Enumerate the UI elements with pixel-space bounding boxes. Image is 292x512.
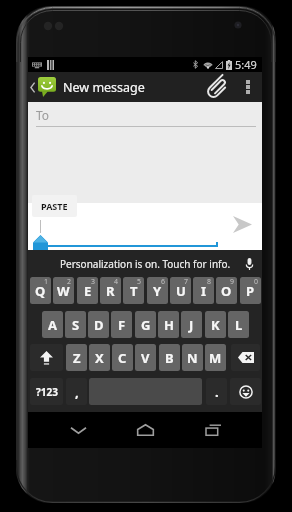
staticText: D [94, 316, 104, 334]
button[interactable]: K [205, 311, 226, 338]
staticText: 0 [254, 277, 259, 287]
staticText: I [201, 282, 207, 300]
button[interactable]: Q [30, 277, 51, 304]
other: Backspace [238, 352, 254, 363]
button[interactable]: Recent apps [195, 412, 231, 448]
button[interactable]: Personalization info [28, 250, 262, 277]
button[interactable]: Shift [30, 344, 63, 371]
button[interactable]: V [135, 344, 156, 371]
staticText: To [36, 107, 50, 123]
staticText: O [221, 282, 232, 300]
staticText: ?123 [36, 385, 58, 399]
button[interactable]: R [100, 277, 121, 304]
staticText: 6 [161, 277, 166, 287]
button[interactable]: L [228, 311, 249, 338]
button[interactable]: . [206, 378, 227, 405]
button[interactable]: PASTE [32, 195, 77, 217]
staticText: A [48, 316, 57, 334]
staticText: PASTE [41, 200, 68, 212]
staticText: 5:49 [235, 57, 257, 72]
button[interactable]: D [88, 311, 109, 338]
staticText: Q [35, 282, 46, 300]
staticText: 2 [67, 277, 72, 287]
button[interactable]: W [53, 277, 74, 304]
button[interactable]: Y [147, 277, 168, 304]
button[interactable]: G [135, 311, 156, 338]
button[interactable]: P [240, 277, 261, 304]
staticText: T [130, 282, 138, 300]
staticText: J [189, 316, 194, 334]
staticText: Personalization is on. Touch for info. [60, 257, 231, 271]
button[interactable]: Attach [201, 72, 235, 102]
staticText: 3 [91, 277, 96, 287]
staticText: C [118, 349, 127, 367]
staticText: R [106, 282, 115, 300]
button[interactable]: M [205, 344, 226, 371]
button[interactable]: J [181, 311, 202, 338]
button[interactable]: O [216, 277, 237, 304]
staticText: 4 [114, 277, 119, 287]
staticText: S [72, 316, 80, 334]
button[interactable]: More options [235, 72, 260, 102]
button[interactable]: U [170, 277, 191, 304]
button[interactable]: Z [66, 344, 87, 371]
button[interactable]: F [111, 311, 132, 338]
staticText: 5 [137, 277, 142, 287]
staticText: P [246, 282, 255, 300]
staticText: 9 [230, 277, 235, 287]
staticText: . [215, 383, 219, 401]
button[interactable]: Emoji [230, 378, 261, 405]
other: Shift [40, 351, 53, 365]
button[interactable]: C [112, 344, 133, 371]
staticText: M [209, 349, 222, 367]
button[interactable]: E [77, 277, 98, 304]
staticText: B [165, 349, 174, 367]
staticText: G [141, 316, 151, 334]
button[interactable]: Hide keyboard [60, 412, 96, 448]
button[interactable]: H [158, 311, 179, 338]
button[interactable]: , [66, 378, 87, 405]
other: Emoji [239, 385, 253, 399]
button[interactable]: X [89, 344, 110, 371]
staticText: X [95, 349, 104, 367]
button[interactable]: N [182, 344, 203, 371]
button[interactable]: Navigate up [28, 72, 58, 102]
button[interactable]: S [65, 311, 86, 338]
staticText: 1 [44, 277, 49, 287]
staticText: 7 [184, 277, 189, 287]
button[interactable]: T [123, 277, 144, 304]
button[interactable]: Backspace [231, 344, 260, 371]
button[interactable]: Send [227, 209, 257, 239]
button[interactable]: I [193, 277, 214, 304]
button[interactable]: B [159, 344, 180, 371]
button[interactable]: ?123 [30, 378, 63, 405]
staticText: H [164, 316, 174, 334]
button[interactable]: To [28, 102, 262, 127]
staticText: New message [63, 79, 145, 96]
staticText: U [176, 282, 186, 300]
button[interactable]: A [42, 311, 63, 338]
staticText: , [75, 383, 79, 401]
staticText: K [211, 316, 220, 334]
staticText: F [118, 316, 126, 334]
staticText: 8 [207, 277, 212, 287]
staticText: L [235, 316, 243, 334]
staticText: V [141, 349, 150, 367]
staticText: Z [73, 349, 81, 367]
staticText: N [187, 349, 198, 367]
button[interactable]: Home [127, 412, 163, 448]
staticText: W [57, 282, 70, 300]
staticText: Y [153, 282, 162, 300]
staticText: E [84, 282, 92, 300]
